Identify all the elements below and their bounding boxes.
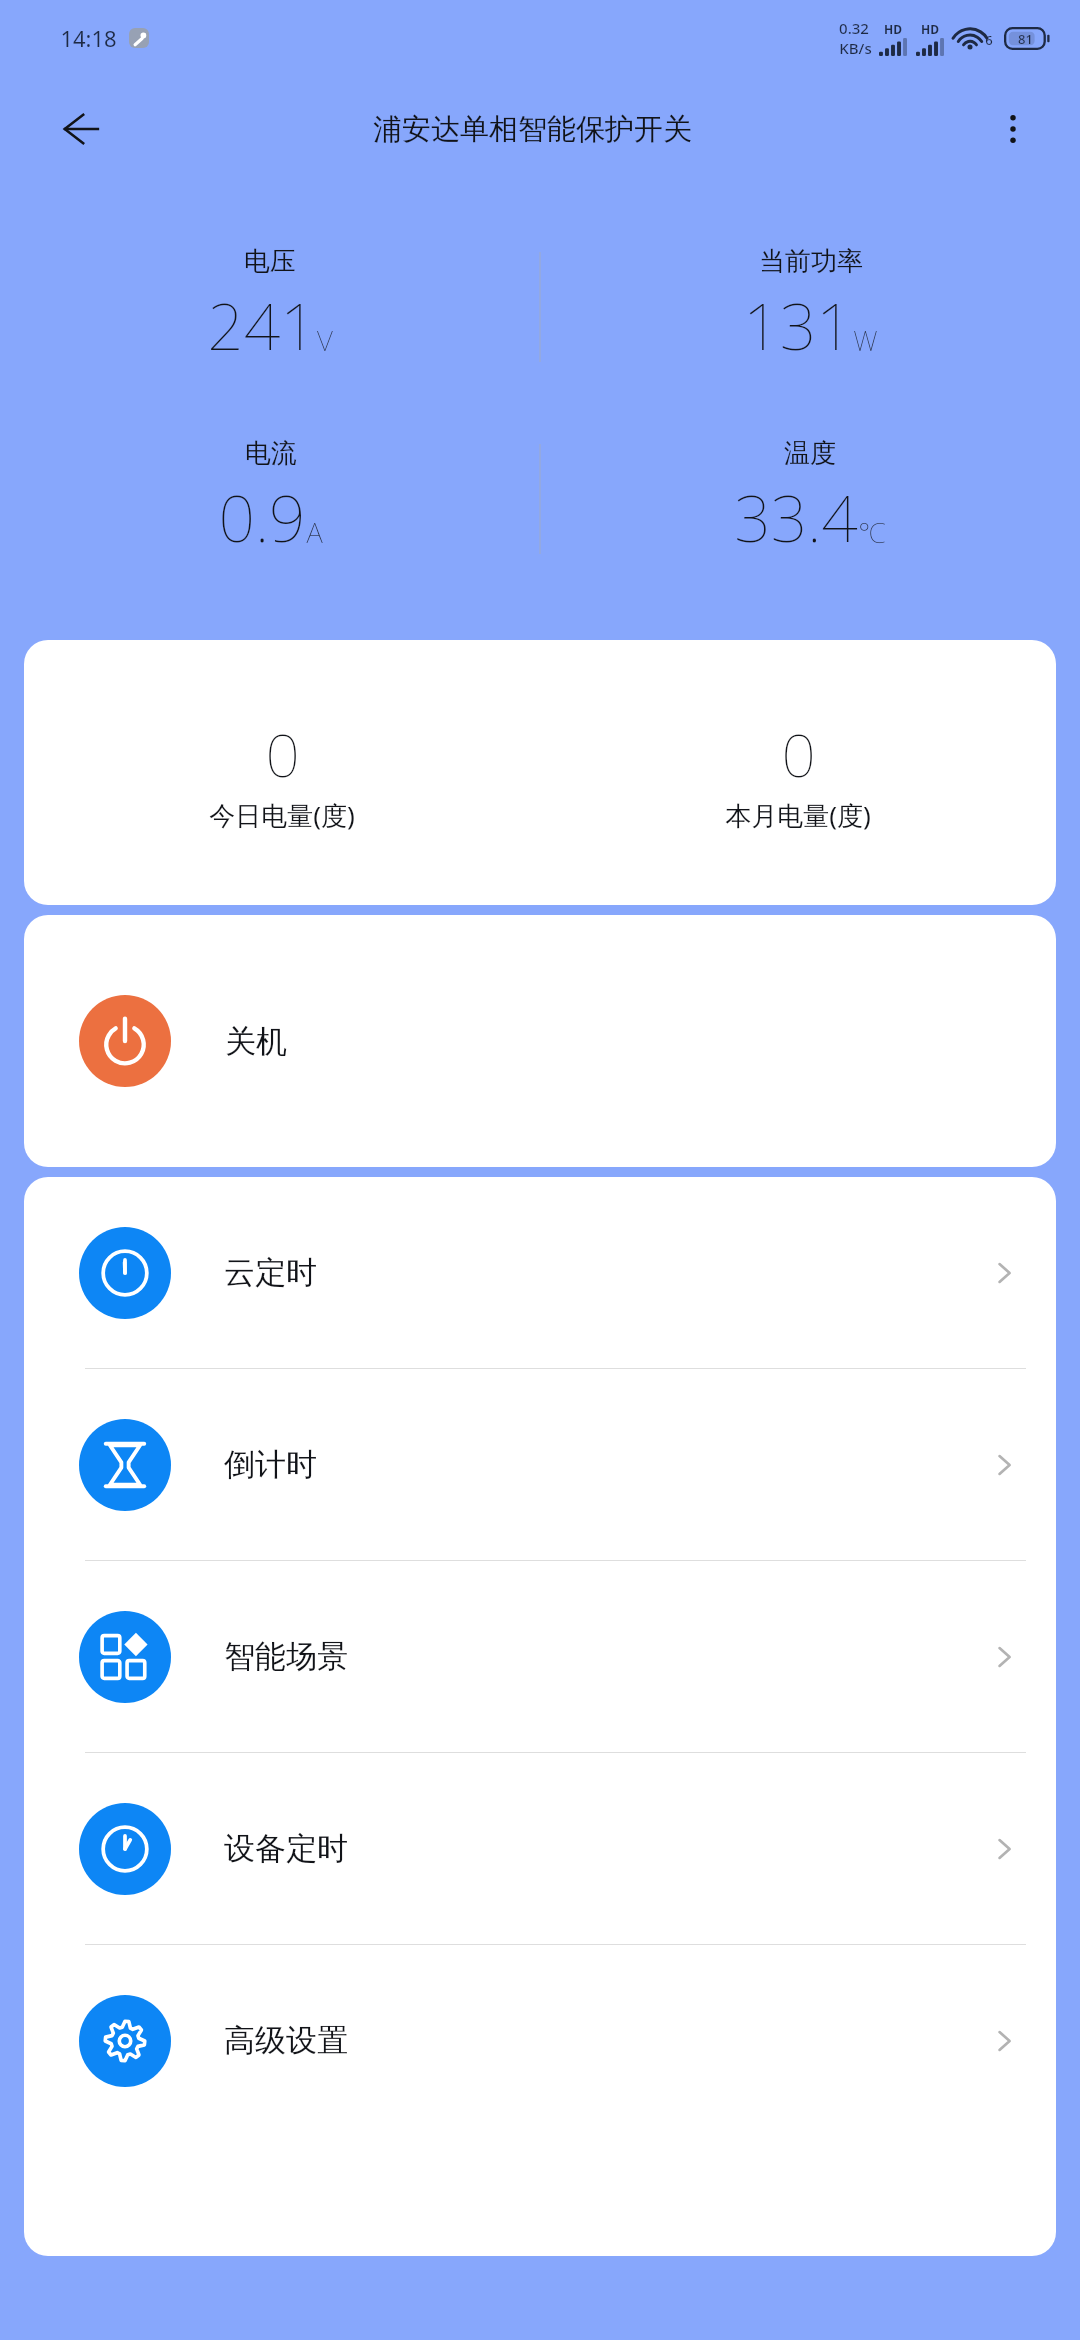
staticText: W — [853, 321, 878, 359]
staticText: V — [317, 321, 333, 359]
staticText: 6 — [985, 31, 993, 49]
staticText: 241 — [207, 282, 317, 369]
button[interactable]: 高级设置 — [24, 1945, 1056, 2136]
button[interactable]: 关机 — [24, 915, 1056, 1167]
staticText: 浦安达单相智能保护开关 — [373, 111, 692, 148]
staticText: HD — [921, 21, 939, 37]
staticText: 关机 — [225, 1022, 287, 1061]
staticText: 0 — [781, 713, 816, 795]
button[interactable]: 云定时 — [24, 1177, 1056, 1368]
staticText: 81 — [1018, 30, 1033, 48]
staticText: 电流 — [245, 437, 297, 470]
button[interactable]: 智能场景 — [24, 1561, 1056, 1752]
staticText: 33.4 — [734, 474, 858, 561]
staticText: KB/s — [839, 38, 872, 58]
staticText: 14:18 — [60, 23, 117, 53]
staticText: 倒计时 — [224, 1445, 317, 1484]
staticText: 本月电量(度) — [725, 797, 871, 833]
staticText: 电压 — [244, 245, 296, 278]
staticText: A — [306, 513, 323, 551]
staticText: HD — [884, 21, 902, 37]
staticText: 0.9 — [218, 474, 306, 561]
staticText: 0 — [265, 713, 300, 795]
staticText: 高级设置 — [224, 2021, 348, 2060]
button[interactable]: 设备定时 — [24, 1753, 1056, 1944]
staticText: 当前功率 — [759, 245, 863, 278]
staticText: 0.32 — [839, 18, 869, 38]
staticText: 设备定时 — [224, 1829, 348, 1868]
button[interactable]: Back — [48, 98, 110, 160]
staticText: 131 — [743, 282, 853, 369]
staticText: 今日电量(度) — [209, 797, 355, 833]
staticText: ℃ — [858, 513, 886, 551]
staticText: 温度 — [784, 437, 836, 470]
staticText: 智能场景 — [224, 1637, 348, 1676]
staticText: 云定时 — [224, 1253, 317, 1292]
button[interactable]: 倒计时 — [24, 1369, 1056, 1560]
button[interactable]: More options — [984, 100, 1042, 158]
